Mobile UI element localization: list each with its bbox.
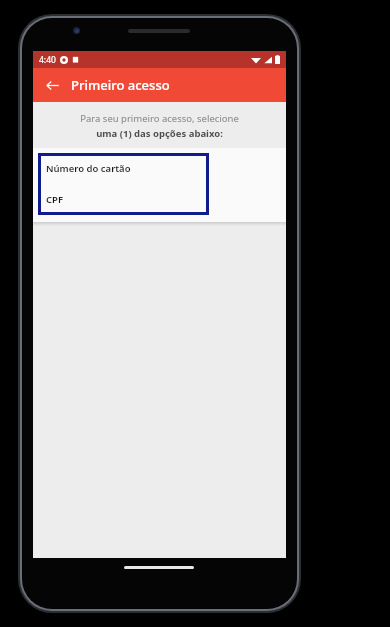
staticText: Para seu primeiro acesso, selecione	[80, 112, 239, 125]
staticText: 4:40	[39, 54, 56, 66]
staticText: uma (1) das opções abaixo:	[96, 127, 223, 140]
staticText: Primeiro acesso	[71, 76, 170, 94]
button[interactable]: CPF	[38, 184, 209, 215]
button[interactable]: Número do cartão	[38, 153, 209, 184]
button[interactable]: Voltar	[38, 71, 66, 99]
staticText: Número do cartão	[46, 162, 131, 175]
staticText: CPF	[46, 193, 64, 206]
